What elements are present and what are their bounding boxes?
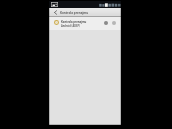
button[interactable]: Status [104, 21, 108, 25]
button[interactable]: More options [112, 21, 116, 25]
staticText: Kontrola prenajmu [60, 11, 89, 15]
staticText: Kontrola prenajmu [61, 20, 87, 24]
staticText: Android (AOSP) [61, 24, 80, 27]
button[interactable]: Kontrola prenajmu [49, 17, 121, 30]
button[interactable]: Back [52, 9, 59, 16]
